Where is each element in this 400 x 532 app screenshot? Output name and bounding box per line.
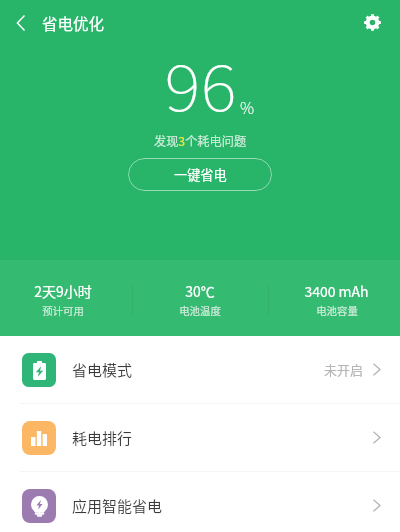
staticText: 预计可用: [42, 303, 84, 318]
button[interactable]: Back: [0, 0, 42, 45]
staticText: 96: [165, 39, 236, 121]
staticText: 电池温度: [179, 303, 221, 318]
staticText: 应用智能省电: [72, 495, 163, 517]
staticText: %: [240, 95, 255, 118]
staticText: 3400 mAh: [304, 281, 369, 301]
button[interactable]: 应用智能省电: [0, 472, 400, 532]
staticText: 未开启: [324, 360, 364, 379]
staticText: 省电优化: [42, 12, 105, 34]
button[interactable]: 一键省电: [128, 158, 272, 191]
staticText: 一键省电: [174, 165, 227, 184]
button[interactable]: Settings: [345, 0, 400, 45]
button[interactable]: 耗电排行: [0, 404, 400, 471]
staticText: 耗电排行: [72, 427, 133, 449]
staticText: 发现3个耗电问题: [154, 132, 247, 150]
button[interactable]: 省电模式: [0, 336, 400, 403]
staticText: 2天9小时: [34, 281, 92, 301]
staticText: 省电模式: [72, 359, 133, 381]
staticText: 电池容量: [316, 303, 358, 318]
staticText: 30℃: [185, 281, 215, 301]
